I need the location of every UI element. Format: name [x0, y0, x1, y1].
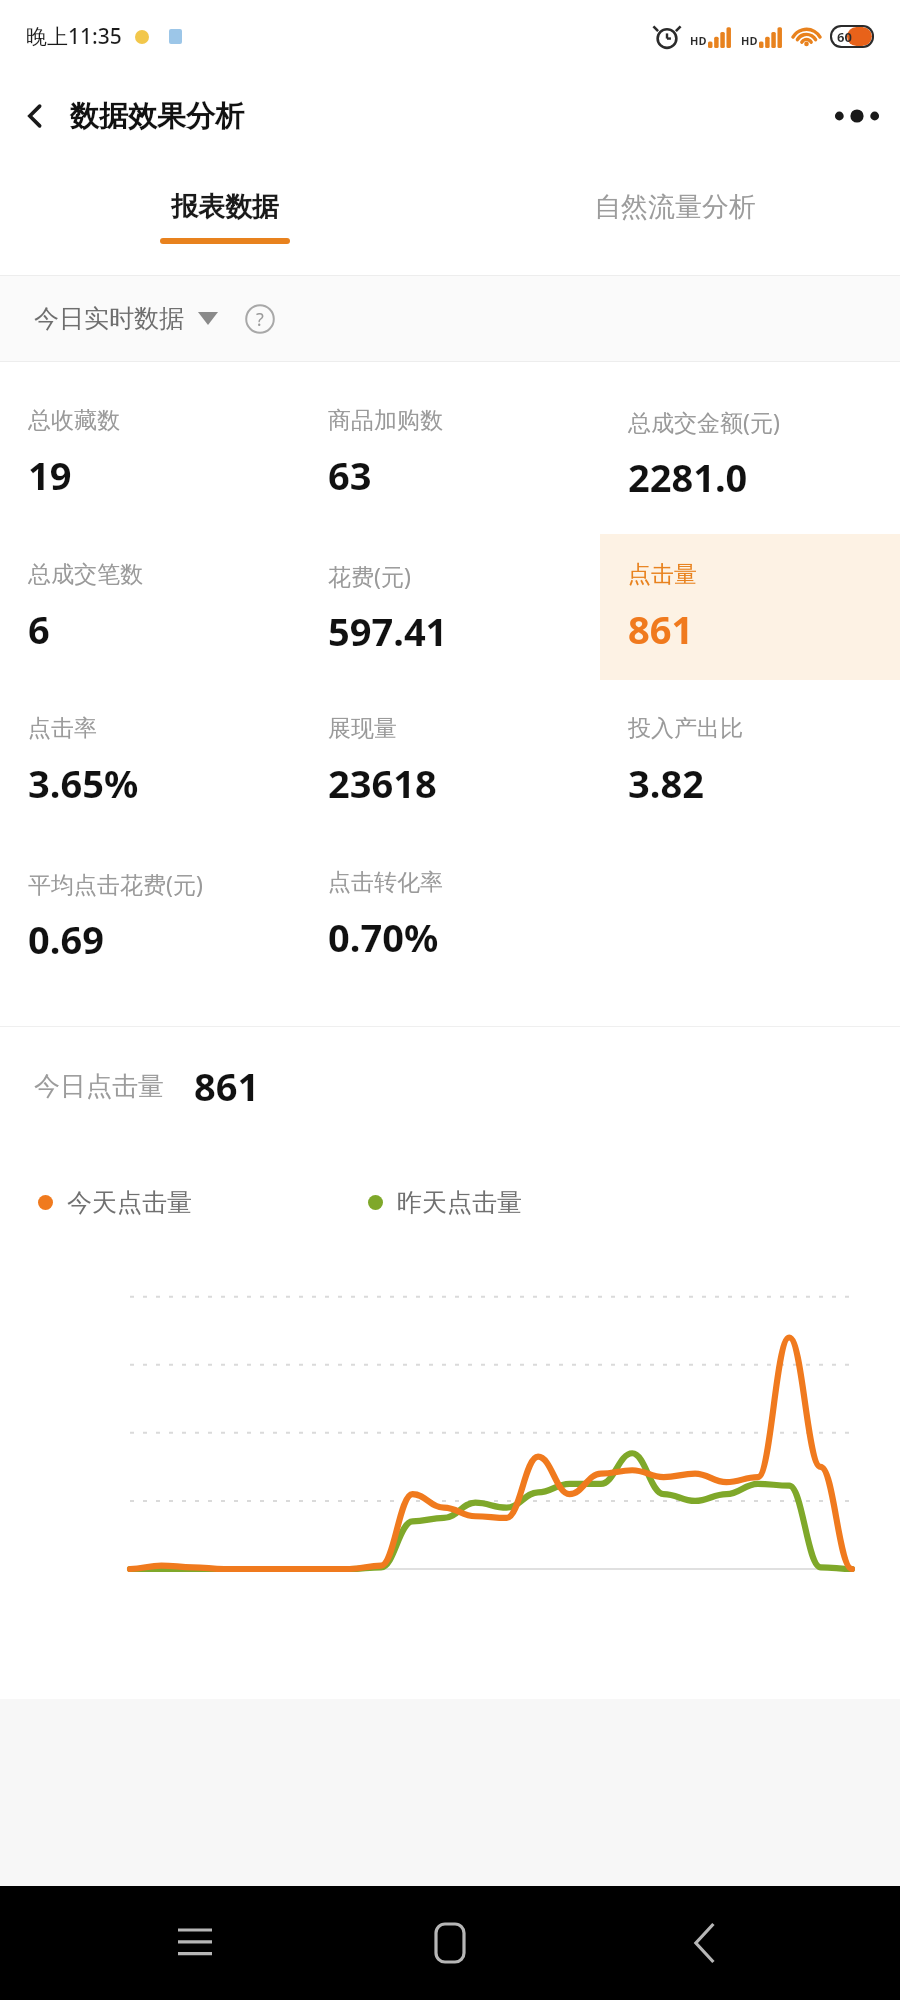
staticText: 2281.0 — [628, 451, 748, 503]
button[interactable]: 点击转化率 — [300, 838, 600, 992]
button[interactable]: 总成交笔数 — [0, 530, 300, 684]
staticText: 3.82 — [628, 757, 704, 809]
staticText: 今天点击量 — [67, 1187, 192, 1218]
button[interactable]: More options — [814, 73, 900, 159]
staticText: 商品加购数 — [328, 406, 443, 435]
button[interactable]: 展现量 — [300, 684, 600, 838]
staticText: 展现量 — [328, 714, 397, 743]
button[interactable]: Home — [390, 1886, 510, 2000]
button[interactable]: 点击量 — [600, 534, 900, 680]
staticText: 3.65% — [28, 757, 139, 809]
staticText: 0.69 — [28, 913, 104, 965]
staticText: HD — [690, 33, 707, 48]
staticText: 昨天点击量 — [397, 1187, 522, 1218]
staticText: 861 — [194, 1060, 260, 1112]
button[interactable]: 自然流量分析 — [450, 159, 900, 275]
staticText: 点击转化率 — [328, 868, 443, 897]
button[interactable]: Help — [244, 303, 276, 335]
staticText: 报表数据 — [171, 190, 279, 224]
staticText: 花费(元) — [328, 560, 411, 591]
button[interactable]: 花费(元) — [300, 530, 600, 684]
staticText: HD — [741, 33, 758, 48]
button[interactable]: 平均点击花费(元) — [0, 838, 300, 992]
staticText: 63 — [328, 449, 372, 501]
staticText: 数据效果分析 — [70, 98, 244, 135]
staticText: 今日实时数据 — [34, 303, 184, 334]
button[interactable]: 点击率 — [0, 684, 300, 838]
button[interactable]: Recents — [135, 1886, 255, 2000]
staticText: 今日点击量 — [34, 1070, 164, 1103]
staticText: 投入产出比 — [628, 714, 743, 743]
staticText: 总成交笔数 — [28, 560, 143, 589]
staticText: 0.70% — [328, 911, 439, 963]
button[interactable]: Back — [0, 81, 70, 151]
button[interactable]: 投入产出比 — [600, 684, 900, 838]
staticText: 19 — [28, 449, 72, 501]
staticText: 总收藏数 — [28, 406, 120, 435]
staticText: 总成交金额(元) — [628, 406, 780, 437]
button[interactable]: 今日实时数据 — [34, 303, 218, 334]
button[interactable]: 总收藏数 — [0, 376, 300, 530]
staticText: 6 — [28, 603, 50, 655]
staticText: 点击量 — [628, 560, 697, 589]
button[interactable]: 总成交金额(元) — [600, 376, 900, 530]
button[interactable]: 报表数据 — [0, 159, 450, 275]
staticText: 晚上11:35 — [26, 22, 122, 51]
staticText: 60 — [837, 28, 852, 46]
staticText: 23618 — [328, 757, 437, 809]
staticText: 自然流量分析 — [594, 190, 756, 224]
button[interactable]: Back — [645, 1886, 765, 2000]
staticText: 平均点击花费(元) — [28, 868, 203, 899]
button[interactable]: 商品加购数 — [300, 376, 600, 530]
staticText: 点击率 — [28, 714, 97, 743]
staticText: 861 — [628, 603, 694, 655]
staticText: ? — [256, 307, 264, 332]
staticText: 597.41 — [328, 605, 448, 657]
